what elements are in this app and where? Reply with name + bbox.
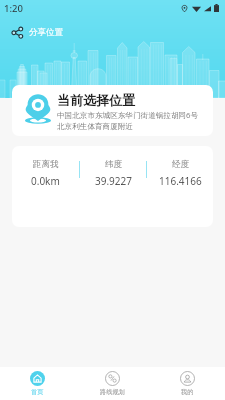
staticText: 116.4166: [159, 174, 202, 187]
staticText: 经度: [172, 159, 189, 170]
staticText: 首页: [31, 388, 44, 396]
button[interactable]: Share: [12, 27, 23, 38]
staticText: 北京利生体育商厦附近: [57, 122, 133, 132]
staticText: 我的: [181, 388, 194, 396]
staticText: 距离我: [33, 159, 59, 170]
button[interactable]: 我的: [150, 367, 225, 400]
staticText: 0.0km: [31, 174, 60, 187]
staticText: 1:20: [4, 2, 23, 15]
staticText: 中国北京市东城区东华门街道锅拉胡同6号: [57, 110, 199, 120]
button[interactable]: 当前选择位置: [12, 85, 213, 136]
staticText: 当前选择位置: [57, 92, 135, 108]
staticText: 分享位置: [29, 27, 63, 38]
button[interactable]: 首页: [0, 367, 75, 400]
staticText: 纬度: [105, 159, 122, 170]
staticText: 39.9227: [95, 174, 132, 187]
button[interactable]: 路线规划: [75, 367, 150, 400]
staticText: 路线规划: [100, 388, 125, 396]
